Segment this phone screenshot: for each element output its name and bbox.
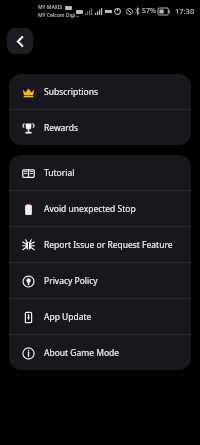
button[interactable]: Avoid unexpected Stop <box>9 191 191 226</box>
button[interactable]: Subscriptions <box>9 74 191 109</box>
button[interactable]: Report Issue or Request Feature <box>9 227 191 262</box>
staticText: MY Celcom Digi… <box>38 12 80 19</box>
staticText: Tutorial <box>44 167 75 179</box>
button[interactable]: Rewards <box>9 110 191 145</box>
staticText: Rewards <box>44 122 79 134</box>
staticText: Privacy Policy <box>44 275 98 287</box>
button[interactable]: Back <box>7 28 33 54</box>
staticText: Report Issue or Request Feature <box>44 239 173 251</box>
staticText: 17:30 <box>175 6 195 16</box>
staticText: MY MAXIS <box>38 4 63 11</box>
staticText: 57% <box>142 6 156 16</box>
button[interactable]: Privacy Policy <box>9 263 191 298</box>
staticText: Subscriptions <box>44 86 98 98</box>
staticText: About Game Mode <box>44 347 120 359</box>
staticText: App Update <box>44 311 92 323</box>
button[interactable]: Tutorial <box>9 155 191 190</box>
staticText: Avoid unexpected Stop <box>44 203 136 215</box>
button[interactable]: About Game Mode <box>9 335 191 370</box>
button[interactable]: App Update <box>9 299 191 334</box>
